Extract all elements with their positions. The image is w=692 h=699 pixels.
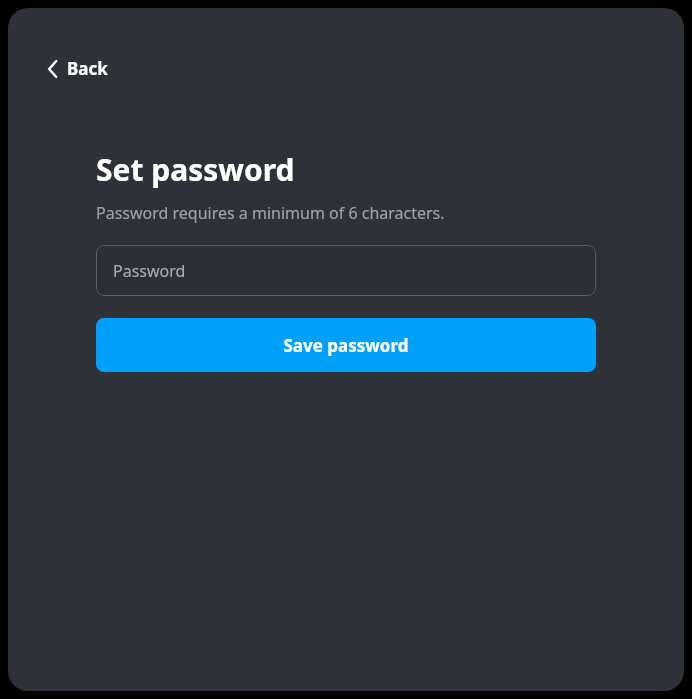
staticText: Password (113, 260, 186, 282)
staticText: Save password (283, 334, 409, 357)
button[interactable]: Back (40, 53, 116, 84)
staticText: Password requires a minimum of 6 charact… (96, 202, 445, 224)
button[interactable]: Password (96, 245, 596, 296)
staticText: Back (67, 57, 108, 80)
staticText: Set password (96, 149, 295, 190)
button[interactable]: Save password (96, 318, 596, 372)
